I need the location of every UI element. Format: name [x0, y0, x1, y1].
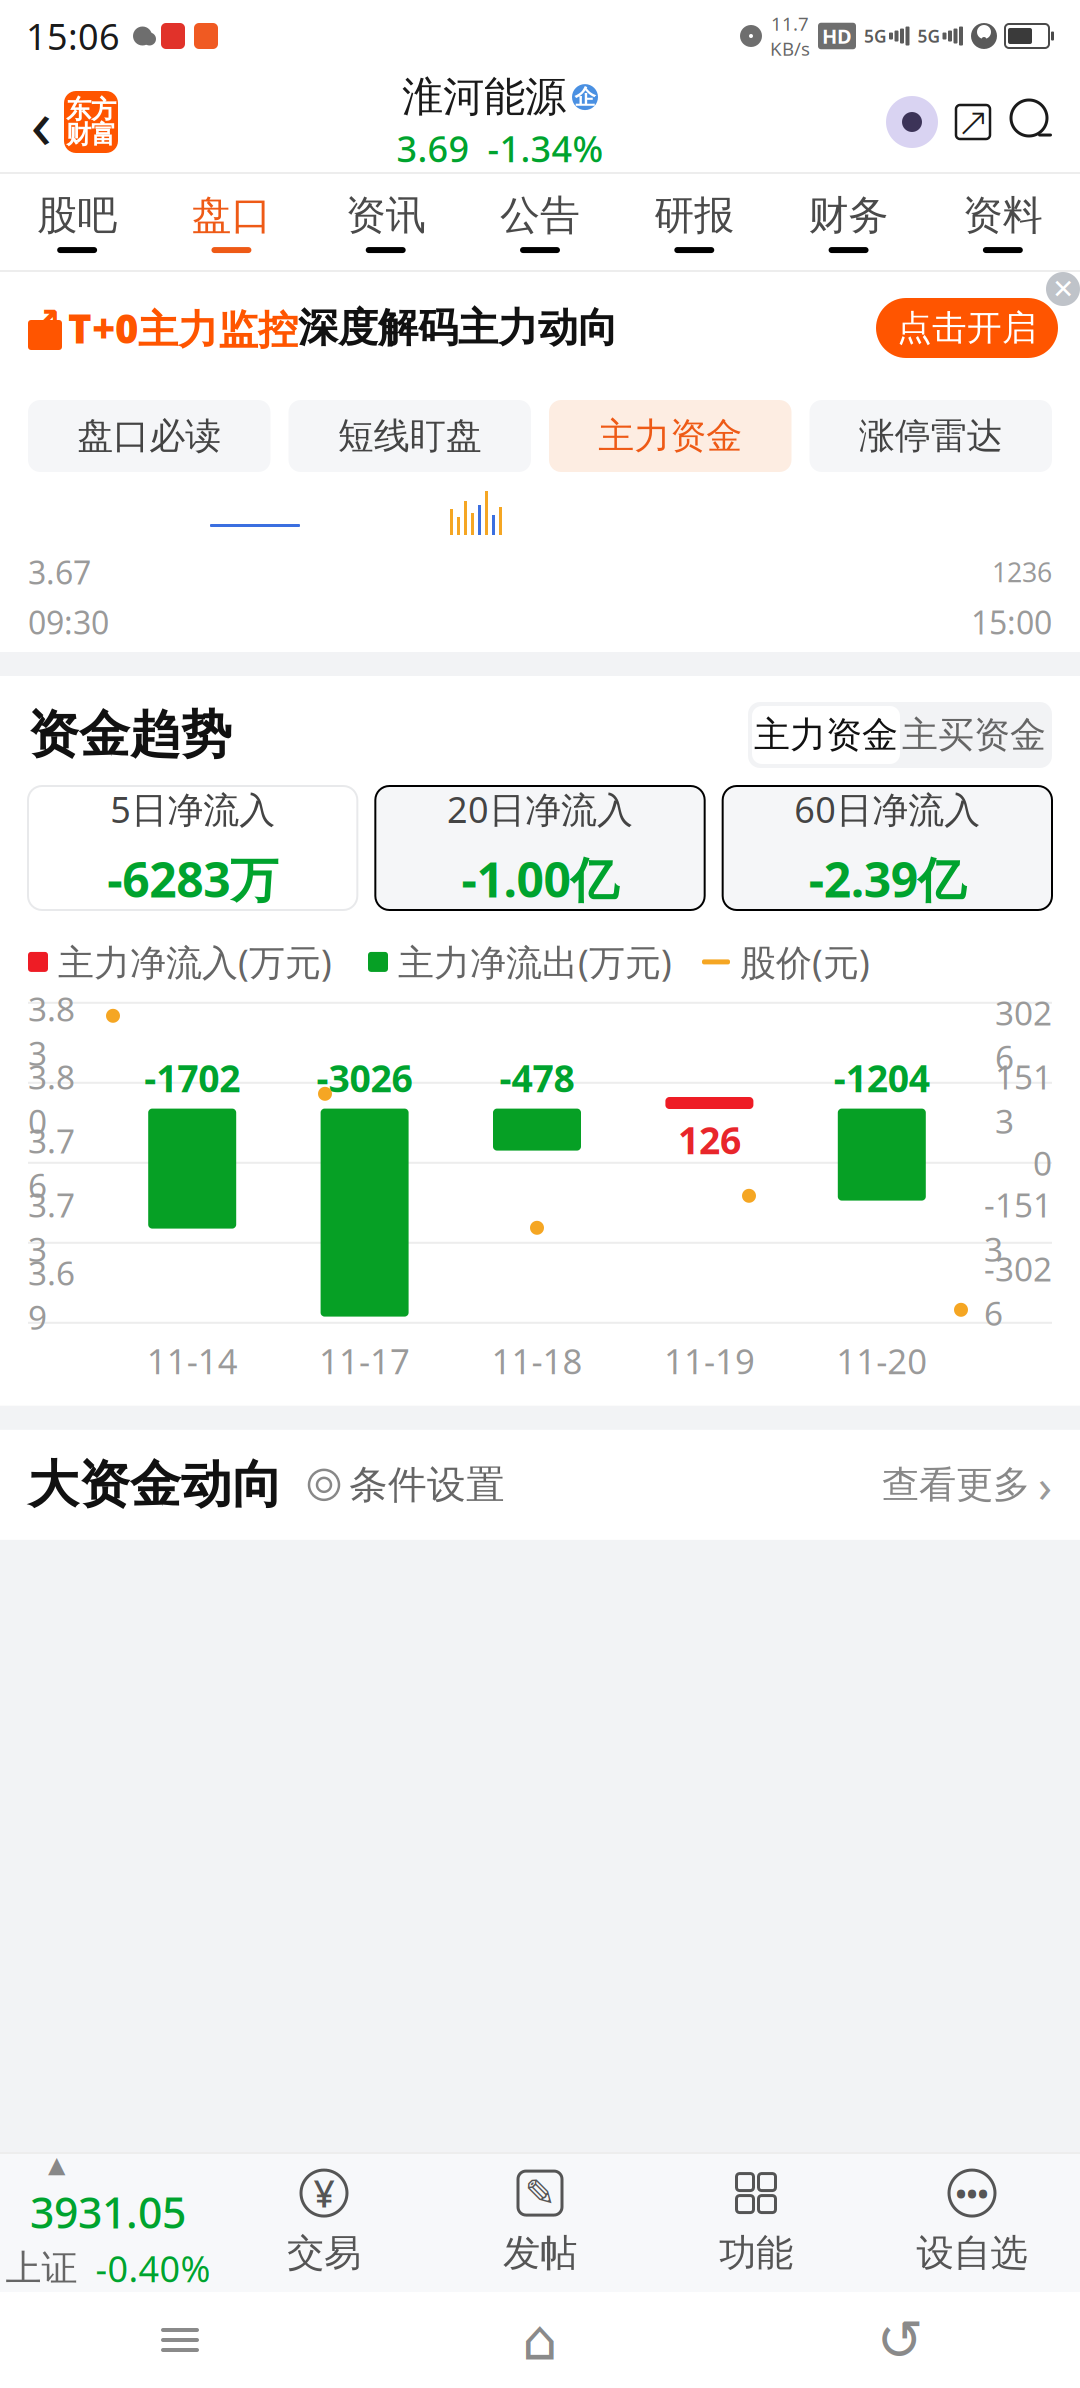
button[interactable]: 功能 [648, 2152, 864, 2292]
button[interactable]: 盘口 [154, 174, 309, 270]
staticText: 交易 [287, 2230, 361, 2276]
staticText: 15:00 [971, 601, 1052, 643]
staticText: 3.69 [396, 124, 469, 172]
staticText: 股吧 [37, 191, 117, 240]
staticText: -3026 [317, 1053, 413, 1103]
staticText: 11-14 [147, 1338, 238, 1384]
button[interactable]: 20日净流入 [375, 786, 705, 910]
button[interactable]: 条件设置 [283, 1461, 505, 1509]
staticText: 短线盯盘 [338, 414, 482, 458]
button[interactable]: 研报 [617, 174, 771, 270]
staticText: 126 [678, 1115, 741, 1165]
staticText: -6283万 [107, 847, 278, 911]
staticText: -1204 [834, 1053, 930, 1103]
staticText: 15:06 [26, 12, 120, 60]
staticText: 主力资金 [754, 713, 898, 757]
staticText: 3931.05 [30, 2184, 186, 2240]
staticText: 3.83 [28, 986, 75, 1075]
button[interactable]: 5日净流入 [28, 786, 357, 910]
button[interactable]: 查看更多 [882, 1455, 1052, 1515]
staticText: 主买资金 [902, 713, 1046, 757]
button[interactable]: ▲ [0, 2152, 216, 2292]
staticText: 20日净流入 [447, 785, 633, 833]
staticText: 60日净流入 [794, 785, 980, 833]
staticText: 公告 [500, 191, 580, 240]
staticText: 主力净流入(万元) [58, 938, 332, 986]
button[interactable]: 分享 [942, 90, 1004, 154]
button[interactable]: 涨停雷达 [809, 400, 1052, 472]
staticText: -1513 [984, 1182, 1052, 1271]
staticText: ⌂ [522, 2308, 558, 2372]
staticText: -2.39亿 [809, 847, 966, 911]
staticText: 盘口 [191, 191, 271, 240]
staticText: 3.67 [28, 551, 91, 593]
staticText: -478 [499, 1053, 574, 1103]
staticText: 深度解码主力动向 [298, 303, 618, 352]
button[interactable]: 60日净流入 [723, 786, 1052, 910]
staticText: ••• [955, 2174, 988, 2213]
staticText: 查看更多 [882, 1462, 1030, 1508]
button[interactable]: ✎ [432, 2152, 648, 2292]
staticText: -0.40% [95, 2244, 210, 2292]
button[interactable]: 财务 [771, 174, 926, 270]
button[interactable]: 返回 [720, 2292, 1080, 2388]
staticText: 发帖 [503, 2230, 577, 2276]
staticText: ✕ [1052, 274, 1074, 304]
staticText: 财富 [66, 119, 116, 150]
staticText: ▲ [48, 2152, 65, 2178]
staticText: 条件设置 [349, 1461, 505, 1509]
staticText: ✎ [524, 2172, 555, 2214]
button[interactable]: 主力资金 [752, 706, 900, 764]
button[interactable]: 头像 [882, 90, 942, 154]
staticText: 1236 [992, 554, 1052, 590]
button[interactable]: 短线盯盘 [288, 400, 531, 472]
staticText: › [1038, 1455, 1052, 1515]
staticText: -1702 [144, 1053, 240, 1103]
button[interactable]: 关闭 [1046, 272, 1080, 306]
staticText: ↺ [876, 2308, 923, 2372]
staticText: 3026 [995, 990, 1052, 1079]
staticText: 5日净流入 [110, 785, 275, 833]
staticText: 功能 [719, 2230, 793, 2276]
staticText: HD [822, 23, 852, 49]
staticText: 设自选 [916, 2230, 1027, 2276]
staticText: 上证 [5, 2246, 77, 2290]
button[interactable]: 最近任务 [0, 2292, 360, 2388]
staticText: 11-17 [319, 1338, 410, 1384]
button[interactable]: ••• [864, 2152, 1080, 2292]
staticText: 11-20 [836, 1338, 927, 1384]
staticText: ↗ [956, 99, 990, 145]
staticText: 大资金动向 [28, 1454, 283, 1516]
button[interactable]: 主力资金 [549, 400, 791, 472]
button[interactable]: ¥ [216, 2152, 432, 2292]
button[interactable]: ↗ [0, 272, 1080, 384]
button[interactable]: 主买资金 [900, 706, 1048, 764]
staticText: 11-19 [664, 1338, 755, 1384]
button[interactable]: 盘口必读 [28, 400, 270, 472]
button[interactable]: 返回 [18, 90, 64, 154]
button[interactable]: 搜索 [1004, 90, 1062, 154]
button[interactable]: 东方财富 [64, 91, 118, 153]
staticText: 点击开启 [897, 307, 1037, 349]
button[interactable]: 公告 [463, 174, 617, 270]
staticText: ‹ [30, 76, 51, 168]
staticText: 3.73 [28, 1182, 75, 1271]
staticText: 11-18 [491, 1338, 582, 1384]
button[interactable]: 资讯 [309, 174, 463, 270]
staticText: 财务 [809, 191, 889, 240]
staticText: 11.7 [771, 11, 809, 36]
staticText: ↗ [28, 299, 62, 345]
staticText: 盘口必读 [77, 414, 221, 458]
staticText: 研报 [654, 191, 734, 240]
button[interactable]: 主页 [360, 2292, 720, 2388]
staticText: -3026 [984, 1246, 1052, 1335]
staticText: 企 [574, 84, 595, 110]
staticText: 资讯 [346, 191, 426, 240]
staticText: 1513 [995, 1054, 1052, 1143]
button[interactable]: 资料 [926, 174, 1080, 270]
staticText: 3.69 [28, 1250, 75, 1339]
staticText: 5G [917, 24, 940, 47]
staticText: 09:30 [28, 601, 109, 643]
staticText: 主力净流出(万元) [398, 938, 672, 986]
button[interactable]: 股吧 [0, 174, 154, 270]
